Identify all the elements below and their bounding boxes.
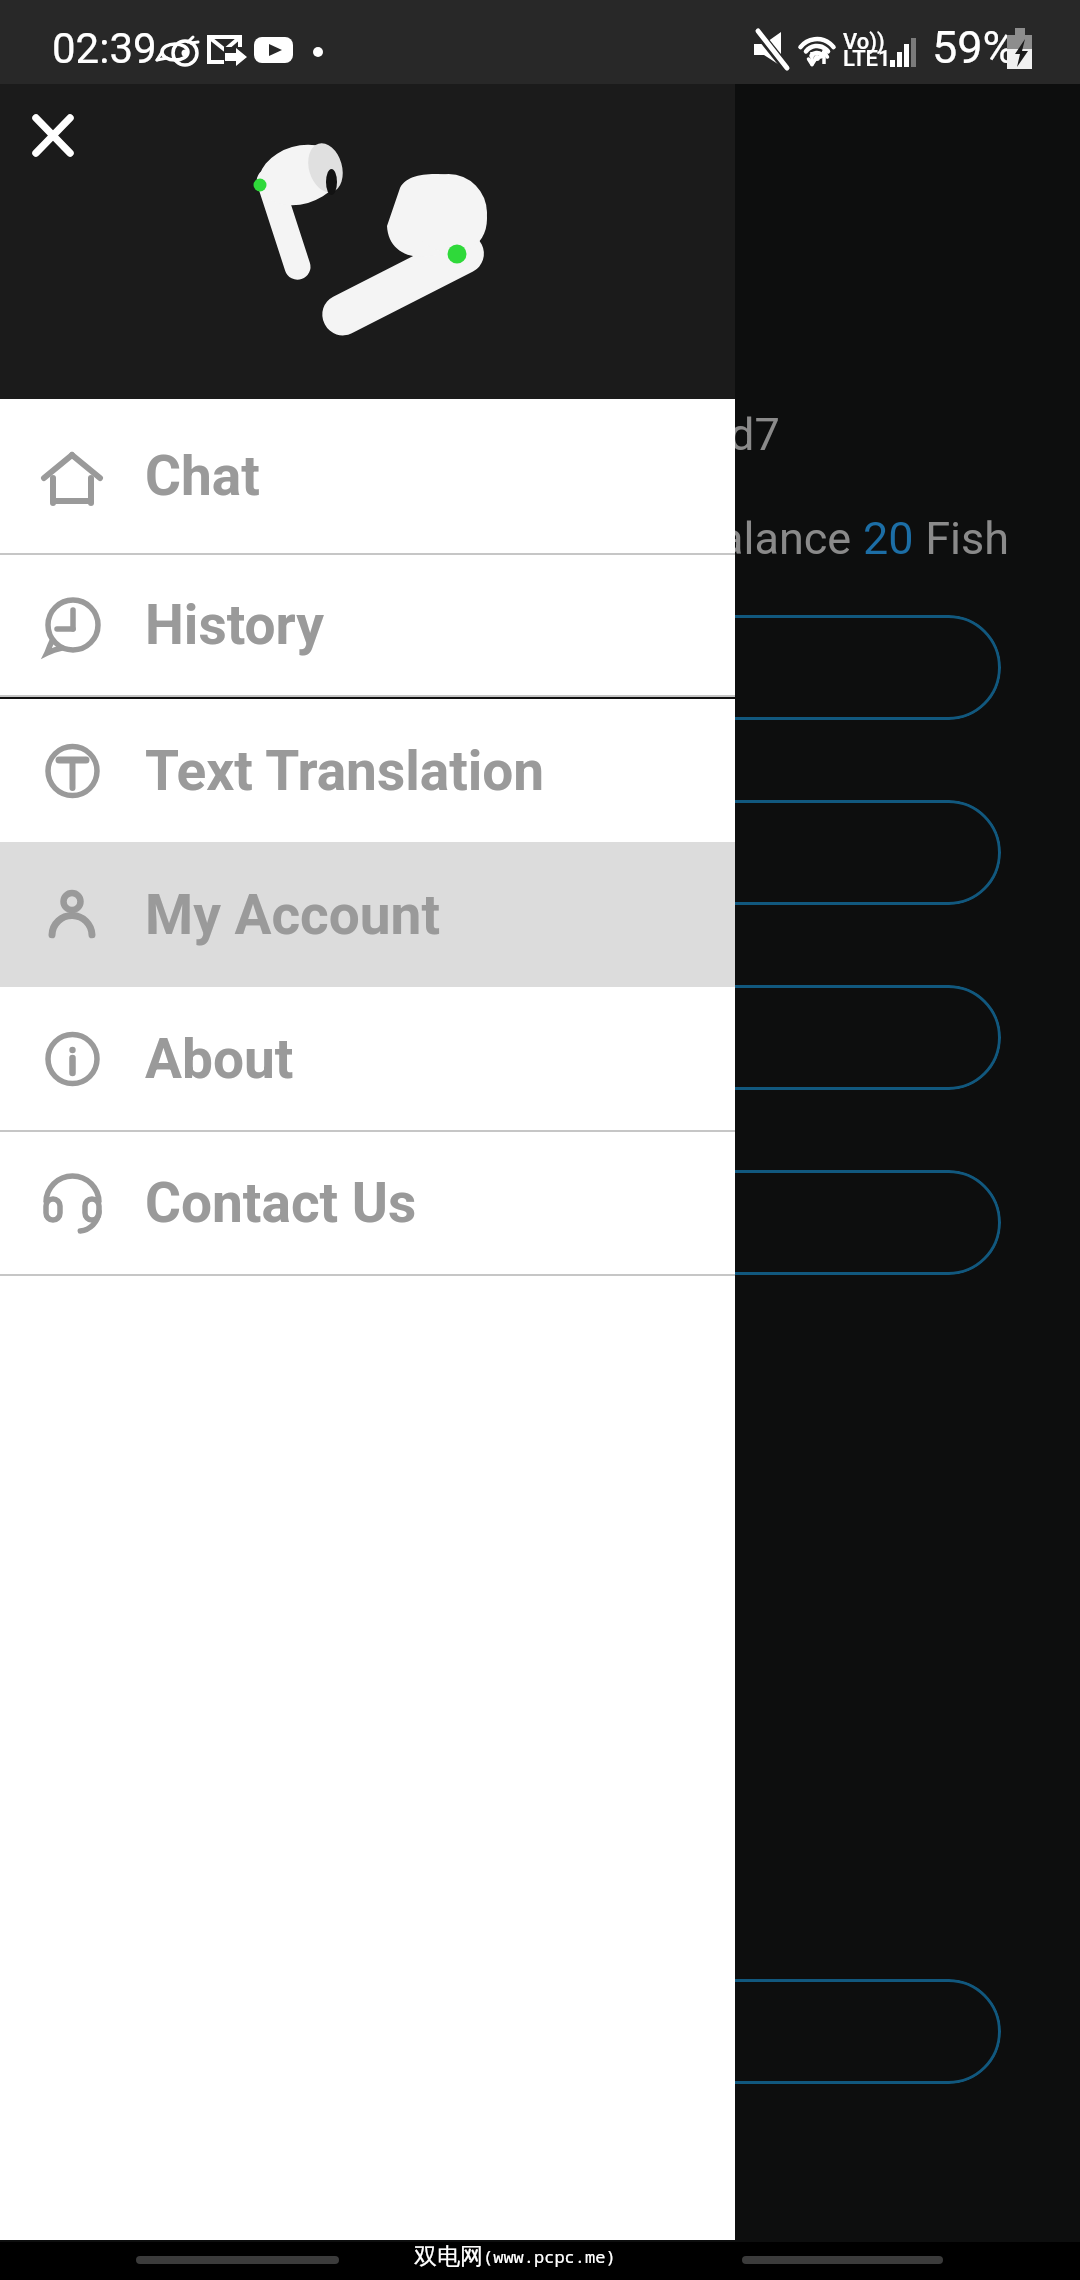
- staticText: 20: [863, 512, 914, 565]
- staticText: My Account: [145, 883, 441, 947]
- staticText: Balance: [691, 512, 863, 565]
- staticText: 02:39: [52, 24, 157, 73]
- button[interactable]: Chat: [0, 399, 735, 553]
- staticText: Fish: [914, 512, 1009, 565]
- button[interactable]: [80, 800, 1001, 905]
- staticText: 59%: [932, 21, 1016, 74]
- button[interactable]: [80, 1170, 1001, 1275]
- button[interactable]: [80, 615, 1001, 720]
- staticText: Contact Us: [145, 1171, 417, 1235]
- staticText: Text Translation: [145, 739, 545, 803]
- staticText: LTE1: [843, 46, 891, 72]
- button[interactable]: Contact Us: [0, 1132, 735, 1274]
- staticText: Vo)): [843, 29, 885, 55]
- staticText: (www.pcpc.me): [483, 2245, 616, 2268]
- staticText: Round7: [626, 408, 780, 461]
- button[interactable]: [80, 1979, 1001, 2084]
- button[interactable]: My Account: [0, 842, 735, 987]
- button[interactable]: Close: [12, 95, 94, 177]
- other: Home gesture handle: [136, 2256, 339, 2264]
- staticText: History: [145, 593, 324, 657]
- staticText: Chat: [145, 444, 260, 508]
- staticText: 双电网: [414, 2242, 483, 2271]
- button[interactable]: Text Translation: [0, 699, 735, 842]
- staticText: About: [145, 1027, 294, 1091]
- button[interactable]: About: [0, 987, 735, 1130]
- button[interactable]: [80, 985, 1001, 1090]
- button[interactable]: History: [0, 555, 735, 695]
